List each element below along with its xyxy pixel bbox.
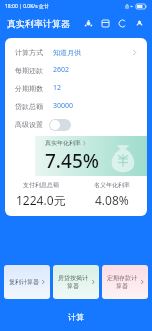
button[interactable]: 定期存款计算器 <box>102 265 148 299</box>
staticText: 真实利率计算器 <box>7 18 70 29</box>
staticText: 18:00 | 0.0K/s 念廿 <box>5 3 49 10</box>
staticText: 复利计算器 <box>9 278 39 286</box>
button[interactable]: 房贷按揭计算器 <box>53 265 99 299</box>
staticText: 支付利息总额 <box>23 181 59 189</box>
button[interactable]: 贷款总额 <box>5 97 147 115</box>
staticText: 贷款总额 <box>15 102 43 111</box>
button[interactable]: Calendar <box>98 16 112 30</box>
staticText: 房贷按揭计算器 <box>57 274 89 290</box>
button[interactable]: Account <box>132 16 146 30</box>
staticText: 1224.0元 <box>16 192 66 208</box>
button[interactable]: 计算方式 <box>5 43 147 61</box>
staticText: 2602 <box>53 65 70 75</box>
staticText: 4.08% <box>95 192 129 208</box>
button[interactable]: Refresh <box>115 16 129 30</box>
staticText: 计算方式 <box>15 48 43 57</box>
staticText: 》 <box>83 140 88 146</box>
button[interactable]: Share <box>81 16 95 30</box>
staticText: 名义年化利率 <box>94 181 130 189</box>
staticText: 高级设置 <box>15 120 43 129</box>
staticText: 定期存款计算器 <box>106 274 138 290</box>
staticText: 7.45% <box>45 148 99 174</box>
button[interactable]: 计算 <box>10 309 142 325</box>
staticText: 每期还款 <box>15 66 43 75</box>
staticText: 计算 <box>68 312 84 322</box>
staticText: 12 <box>53 83 62 93</box>
button[interactable]: 每期还款 <box>5 61 147 79</box>
other: Advanced settings toggle <box>49 119 71 131</box>
staticText: 真实年化利率 <box>45 139 81 147</box>
staticText: 30000 <box>53 101 74 111</box>
button[interactable]: 高级设置 <box>5 115 147 134</box>
staticText: 分期期数 <box>15 84 43 93</box>
staticText: 知道月供 <box>53 48 81 57</box>
button[interactable]: 分期期数 <box>5 79 147 97</box>
button[interactable]: 复利计算器 <box>4 265 50 299</box>
staticText: ⎙ ⌁ <box>125 3 134 10</box>
